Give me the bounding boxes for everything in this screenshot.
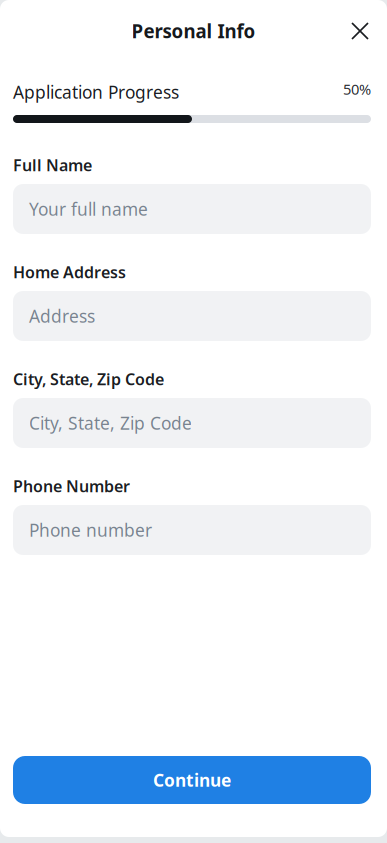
staticText: City, State, Zip Code: [29, 411, 192, 434]
button[interactable]: Phone Number: [13, 505, 371, 555]
staticText: City, State, Zip Code: [13, 368, 164, 390]
staticText: Phone Number: [13, 475, 130, 497]
staticText: Your full name: [29, 197, 148, 220]
staticText: Home Address: [13, 261, 126, 283]
staticText: Personal Info: [131, 19, 255, 43]
staticText: 50%: [343, 79, 371, 99]
button[interactable]: City, State, Zip Code: [13, 398, 371, 448]
button[interactable]: Continue: [13, 756, 371, 804]
button[interactable]: Full Name: [13, 184, 371, 234]
button[interactable]: Home Address: [13, 291, 371, 341]
staticText: Full Name: [13, 154, 92, 176]
staticText: Continue: [153, 768, 231, 791]
staticText: Address: [29, 304, 95, 327]
staticText: Phone number: [29, 518, 152, 541]
staticText: Application Progress: [13, 80, 179, 103]
button[interactable]: Close: [342, 13, 378, 49]
